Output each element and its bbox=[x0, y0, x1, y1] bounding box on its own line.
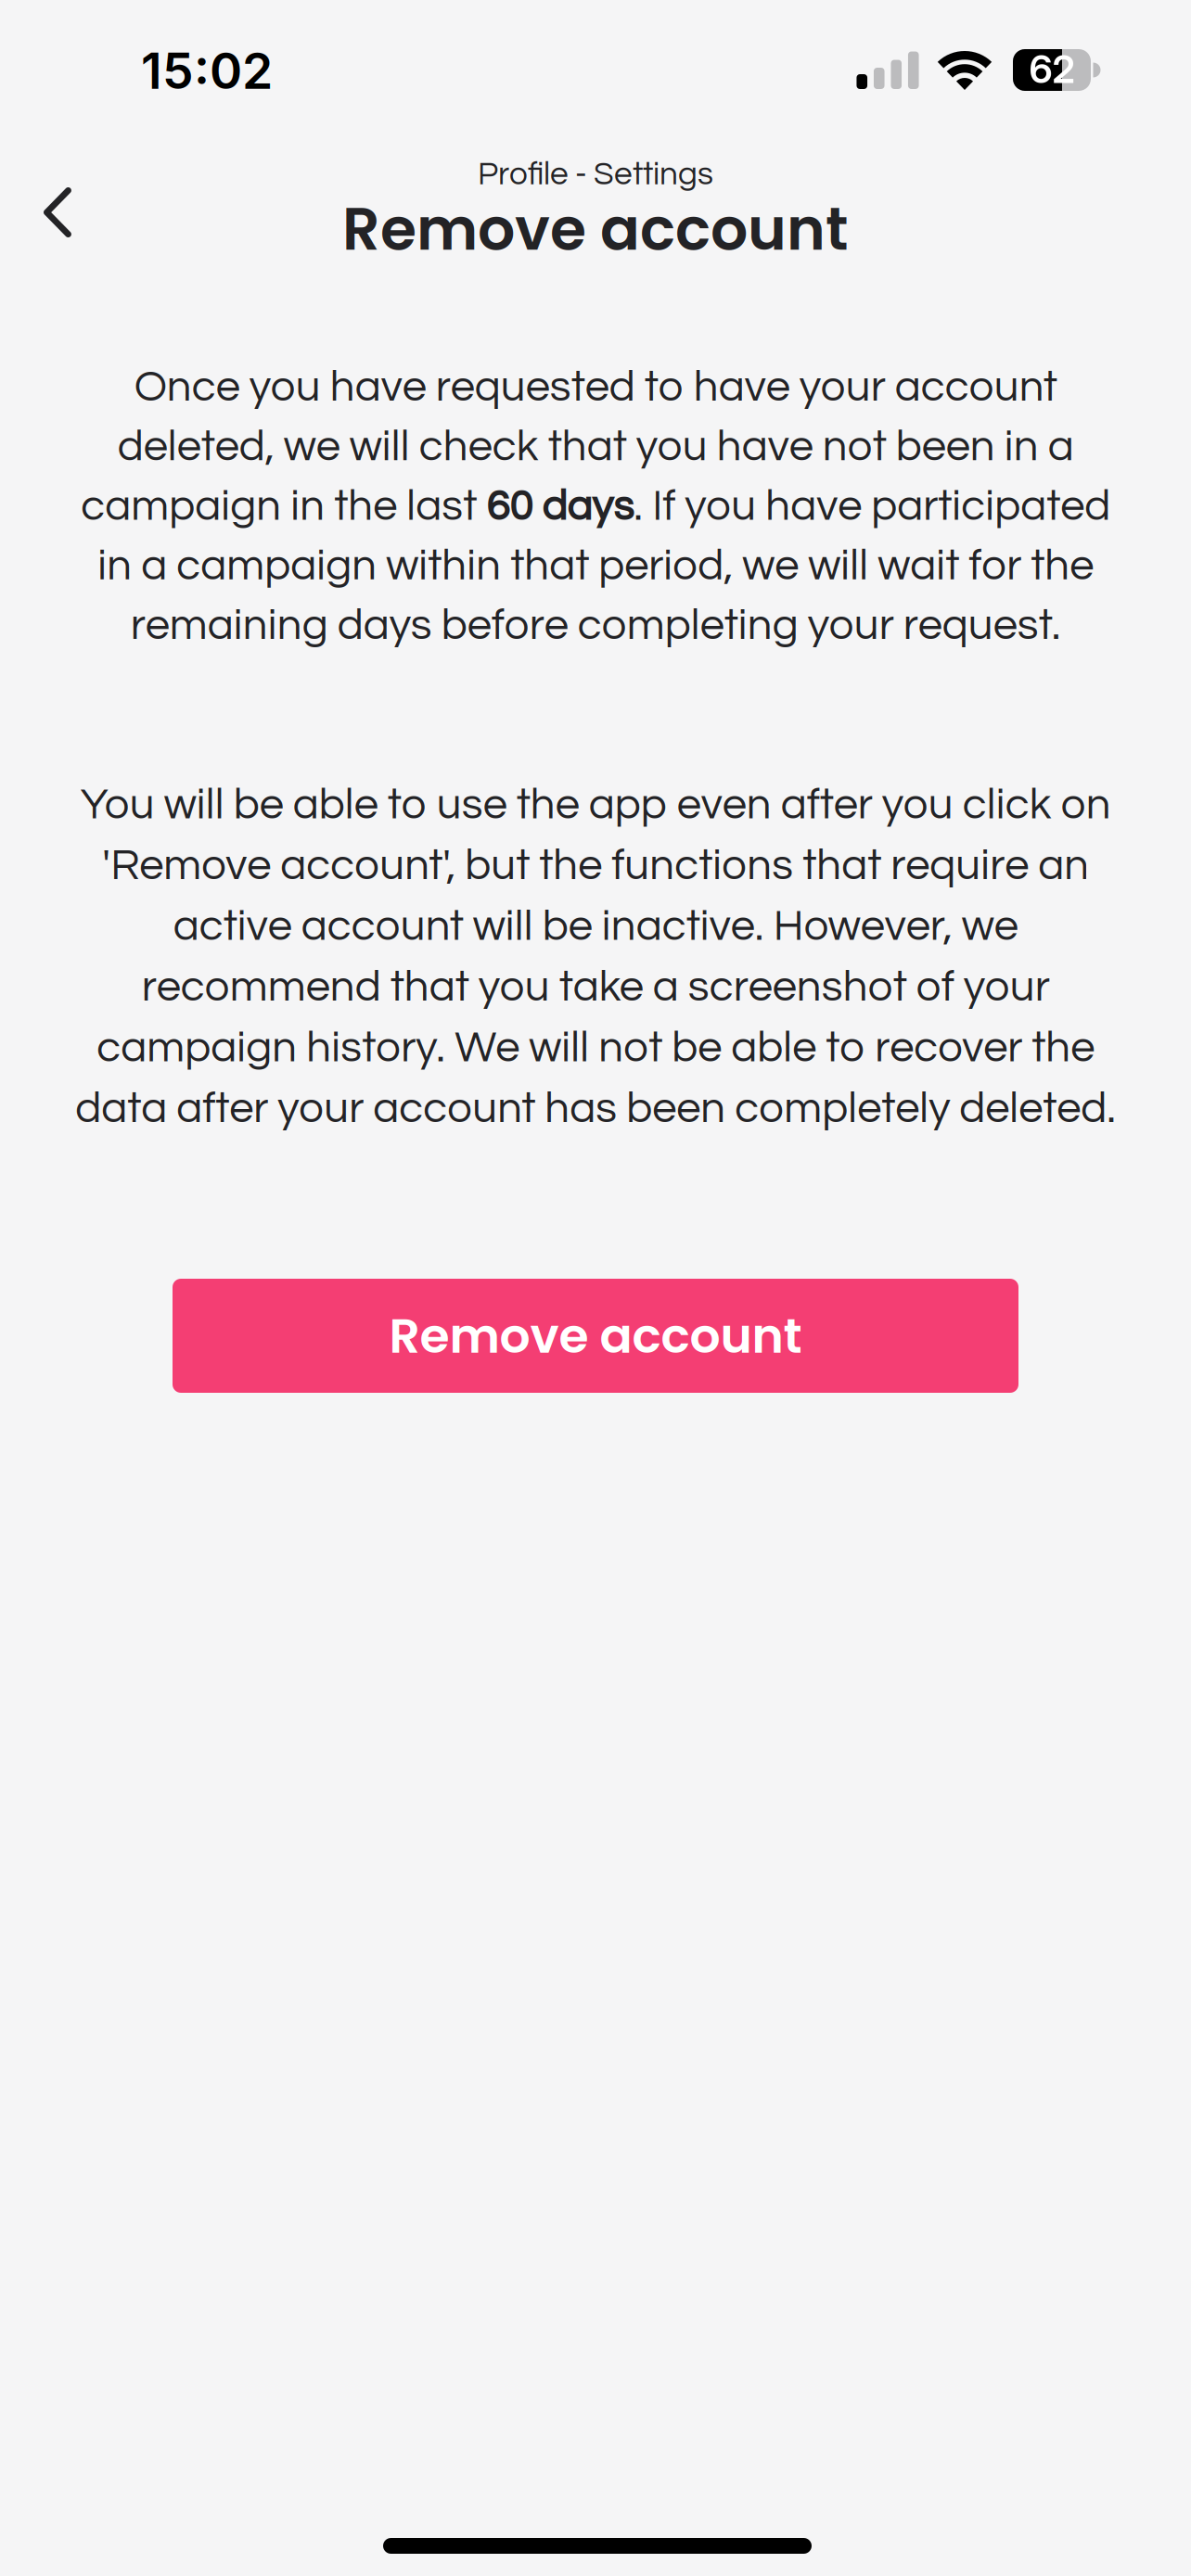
button[interactable]: Remove account bbox=[173, 1279, 1018, 1393]
staticText: 62 bbox=[1029, 46, 1075, 92]
staticText: Remove account bbox=[389, 1302, 802, 1370]
staticText: Once you have requested to have your acc… bbox=[81, 365, 1110, 648]
staticText: You will be able to use the app even aft… bbox=[75, 783, 1116, 1131]
staticText: 15:02 bbox=[141, 41, 273, 101]
staticText: Profile - Settings bbox=[478, 158, 713, 191]
staticText: Remove account bbox=[342, 188, 849, 270]
button[interactable]: Back bbox=[0, 159, 112, 262]
